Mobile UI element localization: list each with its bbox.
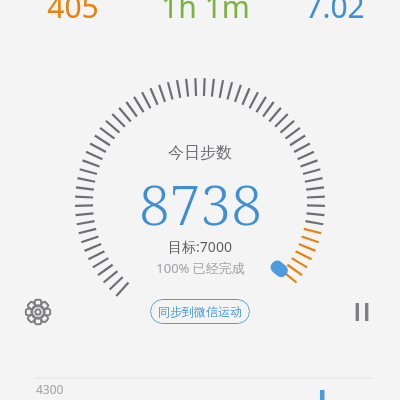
staticText: 8738 <box>139 166 262 226</box>
button[interactable]: 同步到微信运动 <box>150 299 250 324</box>
button[interactable]: 7.02 <box>280 0 390 20</box>
staticText: 405 <box>47 0 99 20</box>
button[interactable]: Pause <box>342 292 382 332</box>
button[interactable]: 1h 1m <box>145 0 265 20</box>
staticText: 100% 已经完成 <box>156 259 245 277</box>
staticText: 7.02 <box>305 0 365 20</box>
staticText: 目标:7000 <box>168 237 232 256</box>
staticText: 4300 <box>36 381 64 397</box>
staticText: 1h 1m <box>161 0 250 20</box>
staticText: 今日步数 <box>168 143 232 163</box>
button[interactable]: 405 <box>18 0 128 20</box>
staticText: 同步到微信运动 <box>158 304 242 319</box>
button[interactable]: Settings <box>18 292 58 332</box>
